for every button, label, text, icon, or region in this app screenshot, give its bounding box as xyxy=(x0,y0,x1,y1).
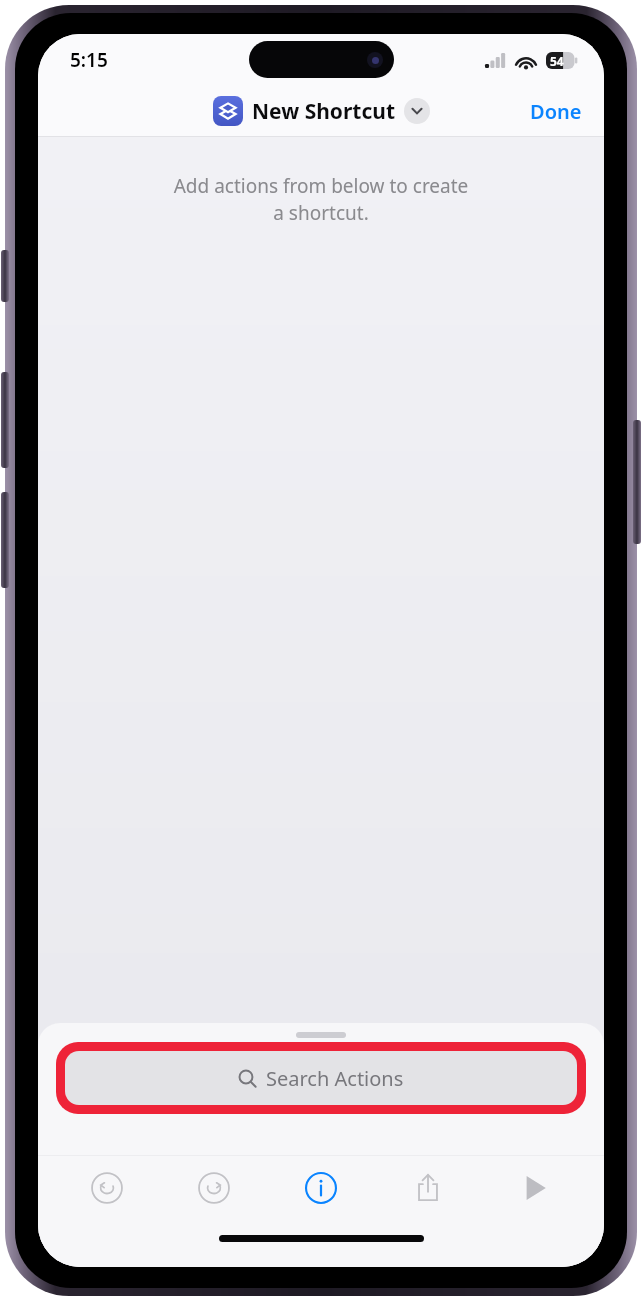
button[interactable]: Shortcut options xyxy=(404,98,430,124)
staticText: 5:15 xyxy=(70,47,108,73)
staticText: Search Actions xyxy=(266,1065,404,1092)
button[interactable]: Search Actions xyxy=(65,1051,577,1105)
button[interactable]: Redo xyxy=(160,1161,267,1215)
staticText: Done xyxy=(530,98,582,125)
staticText: New Shortcut xyxy=(252,97,396,126)
button[interactable]: Share xyxy=(374,1161,481,1215)
button[interactable]: Run xyxy=(481,1161,588,1215)
button[interactable]: Done xyxy=(508,90,604,133)
staticText: 54 xyxy=(550,53,564,69)
button[interactable]: Undo xyxy=(54,1161,160,1215)
button[interactable]: Details xyxy=(267,1161,374,1215)
staticText: Add actions from below to create a short… xyxy=(38,173,604,226)
